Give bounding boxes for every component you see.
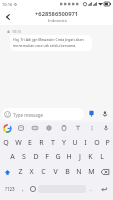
staticText: U: [72, 138, 78, 148]
staticText: W: [15, 138, 22, 148]
staticText: H: [66, 152, 72, 162]
button[interactable]: More: [87, 123, 97, 133]
staticText: G: [55, 152, 61, 162]
button[interactable]: G: [52, 150, 63, 164]
staticText: ?123: [5, 186, 15, 192]
button[interactable]: Clipboard: [59, 123, 69, 133]
staticText: K: [88, 152, 93, 162]
button[interactable]: Q: [0, 136, 12, 150]
button[interactable]: P: [102, 136, 113, 150]
button[interactable]: Voice message: [99, 108, 111, 120]
button[interactable]: Y: [58, 136, 69, 150]
button[interactable]: Z: [15, 165, 26, 179]
staticText: Z: [18, 167, 23, 177]
staticText: Indonesia: [48, 18, 67, 23]
staticText: A: [10, 152, 15, 162]
staticText: R: [39, 138, 44, 148]
staticText: B: [65, 167, 70, 177]
staticText: 10:16: [2, 2, 13, 7]
button[interactable]: Stickers: [16, 123, 26, 133]
staticText: C: [41, 167, 46, 177]
button[interactable]: W: [12, 136, 24, 150]
staticText: 10:13: [12, 29, 21, 34]
button[interactable]: Haj, Tri Adi jgn Mawaskri Cinta Jegati a…: [10, 35, 92, 51]
staticText: O: [94, 138, 100, 148]
staticText: Q: [3, 138, 9, 148]
staticText: .: [90, 185, 92, 193]
button[interactable]: F: [41, 150, 52, 164]
button[interactable]: N: [73, 165, 85, 179]
staticText: Y: [62, 138, 66, 148]
button[interactable]: B: [61, 165, 73, 179]
button[interactable]: L: [96, 150, 107, 164]
staticText: J: [79, 152, 81, 162]
button[interactable]: GIF: [30, 123, 40, 133]
staticText: S: [22, 152, 26, 162]
staticText: ,: [22, 185, 24, 193]
button[interactable]: C: [37, 165, 49, 179]
staticText: L: [100, 152, 104, 162]
staticText: F: [45, 152, 49, 162]
button[interactable]: V: [49, 165, 61, 179]
staticText: V: [53, 167, 58, 177]
button[interactable]: Attach: [85, 107, 98, 120]
staticText: menemukan cara utk selalu bersama.: [13, 43, 77, 48]
staticText: Type message: [13, 112, 44, 118]
button[interactable]: U: [69, 136, 80, 150]
button[interactable]: O: [91, 136, 102, 150]
staticText: M: [88, 167, 95, 177]
button[interactable]: Type message: [2, 108, 84, 120]
button[interactable]: Shift: [0, 165, 15, 179]
button[interactable]: Translate: [73, 123, 83, 133]
button[interactable]: Enter: [95, 182, 112, 196]
button[interactable]: ?123: [1, 182, 18, 196]
button[interactable]: Settings: [44, 123, 54, 133]
button[interactable]: Google search: [2, 123, 12, 133]
button[interactable]: T: [47, 136, 58, 150]
staticText: T: [51, 138, 55, 148]
button[interactable]: Emoji: [27, 182, 38, 196]
button[interactable]: M: [85, 165, 97, 179]
button[interactable]: Backspace: [97, 165, 113, 179]
staticText: X: [29, 167, 34, 177]
staticText: N: [76, 167, 82, 177]
staticText: P: [105, 138, 110, 148]
button[interactable]: ,: [18, 182, 27, 196]
staticText: D: [33, 152, 39, 162]
button[interactable]: K: [85, 150, 96, 164]
button[interactable]: A: [6, 150, 18, 164]
button[interactable]: H: [63, 150, 74, 164]
staticText: +628586500971: [35, 10, 79, 18]
button[interactable]: D: [30, 150, 41, 164]
button[interactable]: R: [36, 136, 47, 150]
staticText: I: [84, 138, 87, 148]
staticText: E: [28, 138, 32, 148]
staticText: Haj, Tri Adi jgn Mawaskri Cinta Jegati a…: [13, 37, 84, 42]
button[interactable]: J: [74, 150, 85, 164]
button[interactable]: I: [80, 136, 91, 150]
button[interactable]: X: [26, 165, 37, 179]
button[interactable]: .: [86, 182, 95, 196]
button[interactable]: Back: [1, 10, 14, 23]
button[interactable]: E: [24, 136, 36, 150]
button[interactable]: S: [18, 150, 30, 164]
button[interactable]: Voice input: [101, 123, 111, 133]
